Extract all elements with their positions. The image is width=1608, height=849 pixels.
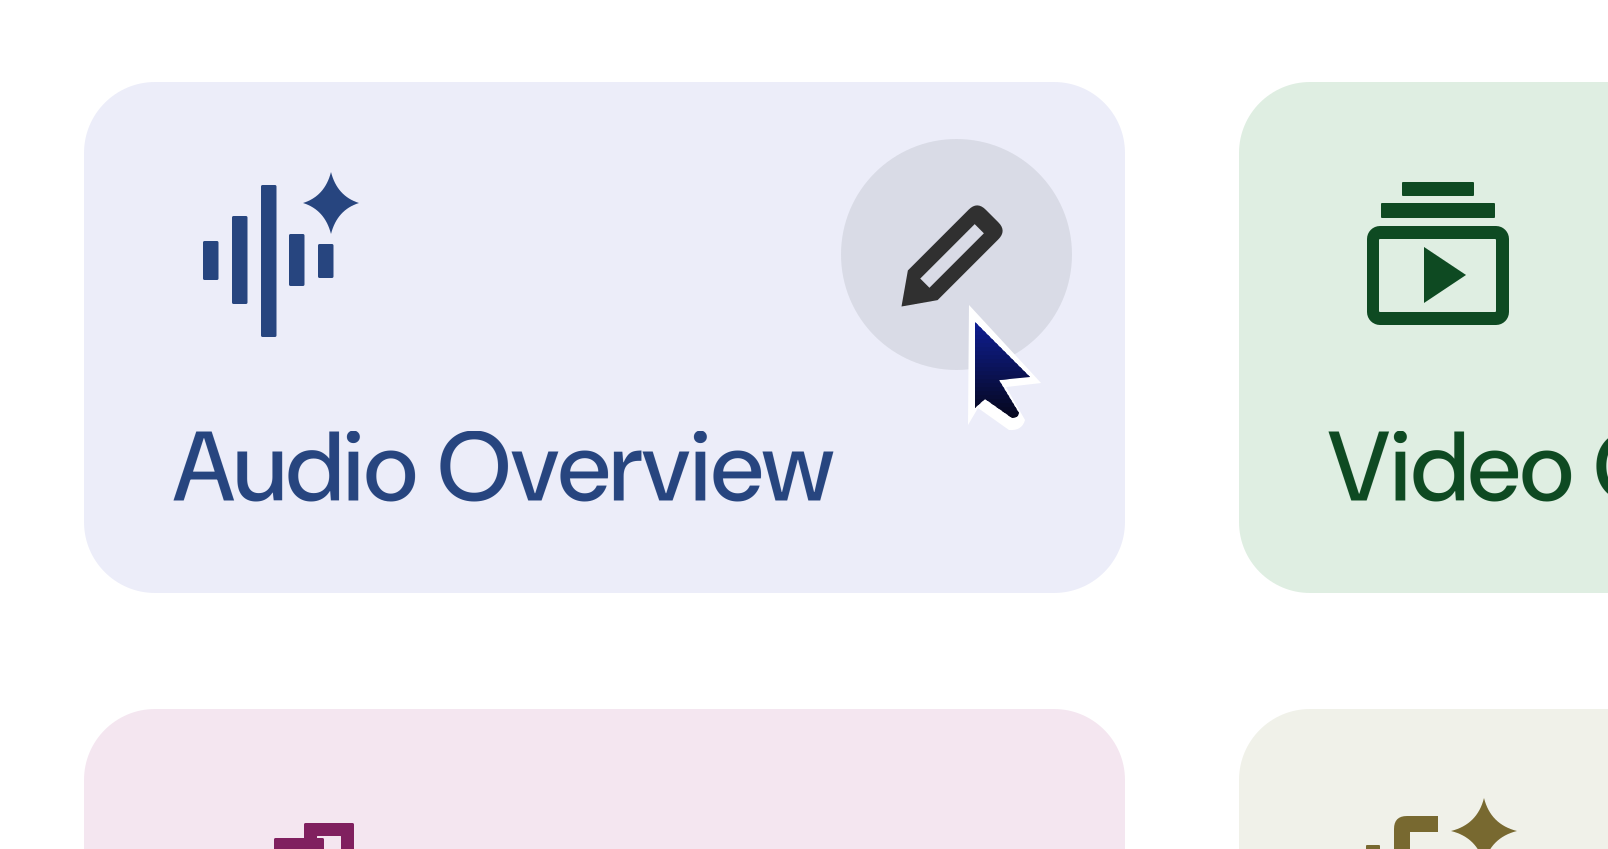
button[interactable]: Reports bbox=[84, 709, 1125, 849]
button[interactable]: Video Overview bbox=[1239, 82, 1608, 593]
button[interactable]: Mind Map bbox=[1239, 709, 1608, 849]
staticText: Video Overview bbox=[1328, 404, 1608, 531]
button[interactable]: Audio Overview bbox=[84, 82, 1125, 593]
button[interactable]: Edit Audio Overview bbox=[841, 139, 1072, 370]
staticText: Audio Overview bbox=[173, 404, 834, 531]
